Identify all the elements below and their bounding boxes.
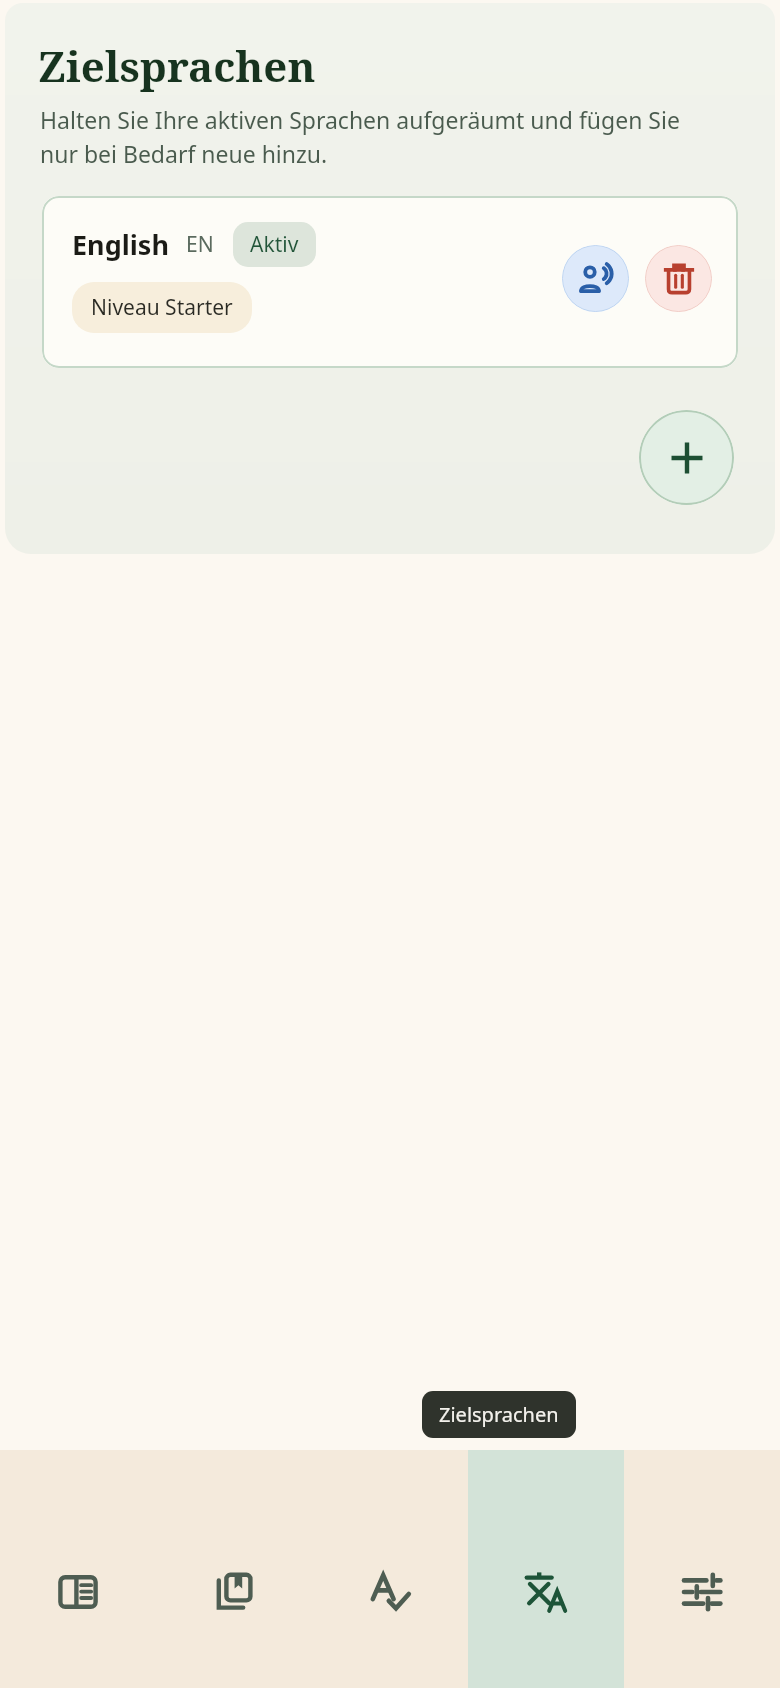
staticText: Halten Sie Ihre aktiven Sprachen aufgerä… (40, 104, 685, 170)
button[interactable]: English (42, 196, 738, 368)
staticText: English (72, 226, 169, 263)
button[interactable]: Bibliothek (156, 1450, 312, 1688)
staticText: Niveau Starter (91, 293, 233, 322)
button[interactable]: Lesen (0, 1450, 156, 1688)
button[interactable]: Rechtschreibung (312, 1450, 468, 1688)
staticText: Aktiv (250, 230, 299, 259)
button[interactable]: Sprache hinzufügen (639, 410, 734, 505)
staticText: Zielsprachen (439, 1401, 559, 1428)
button[interactable]: Löschen (645, 245, 712, 312)
staticText: EN (186, 230, 214, 259)
staticText: Zielsprachen (38, 37, 316, 94)
button[interactable]: Einstellungen (624, 1450, 780, 1688)
button[interactable]: Zielsprachen (468, 1450, 624, 1688)
button[interactable]: Aussprache anhören (562, 245, 629, 312)
